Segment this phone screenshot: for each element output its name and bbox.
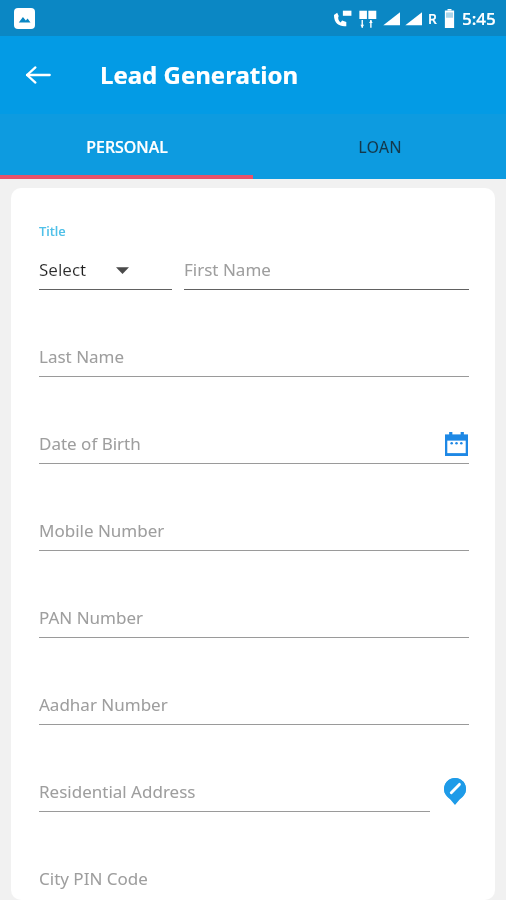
staticText: 5:45 [462, 7, 496, 30]
button[interactable]: Last Name [39, 345, 469, 377]
button[interactable]: Date of Birth [39, 432, 469, 464]
staticText: PAN Number [39, 606, 144, 629]
staticText: Last Name [39, 345, 125, 368]
staticText: Title [39, 222, 66, 240]
staticText: Mobile Number [39, 519, 165, 542]
button[interactable]: Residential Address [39, 780, 469, 812]
button[interactable]: LOAN [253, 114, 506, 179]
staticText: First Name [184, 258, 271, 281]
button[interactable]: Aadhar Number [39, 693, 469, 725]
staticText: LOAN [358, 136, 402, 158]
button[interactable]: PERSONAL [0, 114, 253, 179]
staticText: Aadhar Number [39, 693, 168, 716]
staticText: Select [39, 258, 87, 281]
button[interactable]: First Name [184, 258, 469, 290]
staticText: Lead Generation [100, 58, 298, 91]
button[interactable]: Pick location [441, 777, 469, 805]
button[interactable]: PAN Number [39, 606, 469, 638]
button[interactable]: Mobile Number [39, 519, 469, 551]
button[interactable]: Pick date [443, 431, 469, 457]
staticText: City PIN Code [39, 867, 148, 890]
staticText: Date of Birth [39, 432, 141, 455]
staticText: PERSONAL [86, 136, 168, 158]
staticText: Residential Address [39, 780, 196, 803]
staticText: R [428, 9, 437, 28]
button[interactable]: City PIN Code [39, 867, 469, 898]
button[interactable]: Select [39, 258, 172, 290]
button[interactable]: Back [10, 47, 66, 103]
